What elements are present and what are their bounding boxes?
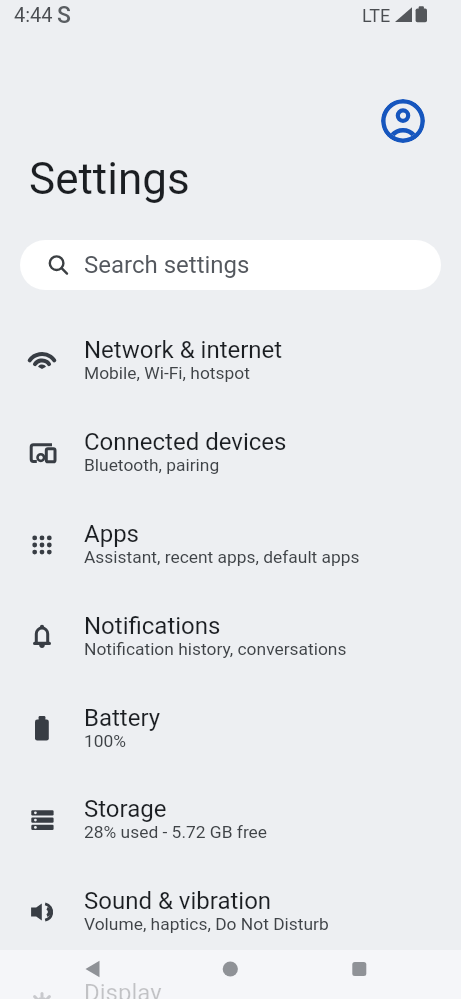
staticText: Settings	[29, 153, 190, 205]
staticText: Display	[84, 979, 162, 999]
button[interactable]: Network & internet	[0, 319, 461, 410]
staticText: 100%	[84, 731, 127, 751]
staticText: 28% used - 5.72 GB free	[84, 822, 268, 842]
button[interactable]: Storage	[0, 778, 461, 869]
button[interactable]: Battery	[0, 687, 461, 778]
staticText: Notification history, conversations	[84, 639, 347, 659]
button[interactable]: Sound & vibration	[0, 870, 461, 961]
button[interactable]	[175, 950, 285, 999]
staticText: Volume, haptics, Do Not Disturb	[84, 914, 329, 934]
staticText: Assistant, recent apps, default apps	[84, 547, 360, 567]
staticText: 4:44	[14, 3, 53, 26]
button[interactable]	[381, 99, 425, 143]
staticText: Mobile, Wi-Fi, hotspot	[84, 363, 250, 383]
button[interactable]: Notifications	[0, 595, 461, 686]
staticText: Connected devices	[84, 428, 287, 456]
staticText: Search settings	[84, 251, 250, 279]
button[interactable]	[305, 950, 415, 999]
button[interactable]	[40, 950, 150, 999]
button[interactable]: Search settings	[20, 240, 441, 290]
staticText: S	[57, 2, 71, 29]
staticText: LTE	[362, 5, 391, 26]
staticText: Bluetooth, pairing	[84, 455, 220, 475]
staticText: Network & internet	[84, 336, 283, 364]
staticText: Sound & vibration	[84, 887, 272, 915]
button[interactable]: Apps	[0, 503, 461, 594]
button[interactable]: Display	[0, 962, 461, 999]
staticText: Storage	[84, 795, 167, 823]
button[interactable]: Connected devices	[0, 411, 461, 502]
staticText: Battery	[84, 704, 161, 732]
staticText: Apps	[84, 520, 139, 548]
staticText: Notifications	[84, 612, 221, 640]
